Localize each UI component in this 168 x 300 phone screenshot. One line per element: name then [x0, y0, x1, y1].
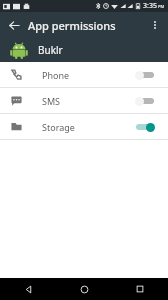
button[interactable]: Phone: [0, 62, 168, 87]
button[interactable]: Recent apps: [112, 278, 168, 300]
button[interactable]: Off: [134, 68, 156, 82]
staticText: App permissions: [28, 18, 116, 33]
button[interactable]: Buklr: [0, 38, 168, 62]
button[interactable]: Back: [0, 278, 56, 300]
button[interactable]: On: [134, 120, 156, 134]
staticText: 3:35: [143, 1, 157, 11]
button[interactable]: Home: [56, 278, 112, 300]
staticText: Phone: [42, 69, 70, 81]
button[interactable]: More options: [145, 15, 165, 35]
button[interactable]: Off: [134, 94, 156, 108]
staticText: Buklr: [38, 43, 63, 57]
staticText: SMS: [42, 95, 61, 107]
staticText: Storage: [42, 121, 75, 133]
button[interactable]: Back: [4, 15, 24, 35]
staticText: PM: [158, 4, 165, 9]
button[interactable]: Storage: [0, 114, 168, 139]
button[interactable]: SMS: [0, 88, 168, 113]
